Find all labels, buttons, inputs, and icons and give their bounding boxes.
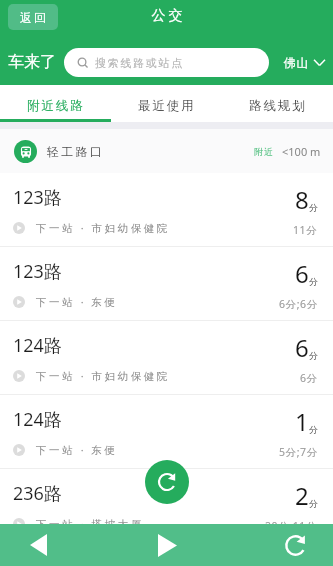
staticText: 8: [295, 183, 309, 216]
button[interactable]: 123路: [0, 247, 333, 321]
staticText: 11分: [293, 223, 318, 237]
staticText: 分: [309, 202, 318, 213]
staticText: 返回: [19, 10, 47, 25]
button[interactable]: Recents: [273, 524, 317, 566]
button[interactable]: 123路: [0, 173, 333, 247]
staticText: 124路: [13, 407, 62, 432]
button[interactable]: Back: [16, 524, 60, 566]
staticText: 124路: [13, 333, 62, 358]
staticText: 123路: [13, 185, 62, 210]
staticText: 搜索线路或站点: [95, 56, 184, 70]
staticText: 公交: [150, 7, 184, 25]
staticText: 236路: [13, 481, 62, 506]
staticText: 路线规划: [249, 98, 307, 114]
button[interactable]: 最近使用: [111, 92, 222, 119]
button[interactable]: 路线规划: [222, 92, 333, 119]
staticText: 分: [309, 498, 318, 509]
staticText: 下一站 · 市妇幼保健院: [36, 369, 170, 383]
staticText: 佛山: [283, 55, 309, 70]
button[interactable]: Refresh: [145, 460, 189, 504]
staticText: 下一站 · 塔坡大厦: [36, 517, 144, 531]
staticText: 2: [295, 479, 309, 512]
staticText: 车来了: [8, 52, 56, 72]
button[interactable]: Home: [145, 524, 189, 566]
staticText: 6分;6分: [279, 297, 318, 311]
staticText: 最近使用: [138, 98, 196, 114]
staticText: 分: [309, 350, 318, 361]
button[interactable]: 124路: [0, 321, 333, 395]
staticText: 下一站 · 东便: [36, 443, 118, 457]
staticText: 分: [309, 424, 318, 435]
staticText: 1: [295, 405, 309, 438]
staticText: 分: [309, 276, 318, 287]
staticText: 轻工路口: [47, 144, 105, 159]
staticText: 123路: [13, 259, 62, 284]
staticText: 20分;11分: [265, 519, 318, 533]
staticText: 6: [295, 257, 309, 290]
button[interactable]: 搜索线路或站点: [64, 48, 269, 77]
staticText: 6分: [300, 371, 318, 385]
staticText: 5分;7分: [279, 445, 318, 459]
button[interactable]: 返回: [8, 4, 58, 30]
button[interactable]: 124路: [0, 395, 333, 469]
staticText: 下一站 · 市妇幼保健院: [36, 221, 170, 235]
staticText: <100 m: [282, 144, 321, 159]
staticText: 下一站 · 东便: [36, 295, 118, 309]
staticText: 附近: [254, 146, 273, 157]
button[interactable]: 236路: [0, 469, 333, 543]
button[interactable]: 附近线路: [0, 92, 111, 119]
staticText: 附近线路: [27, 98, 85, 114]
button[interactable]: 佛山: [283, 55, 325, 70]
staticText: 6: [295, 331, 309, 364]
